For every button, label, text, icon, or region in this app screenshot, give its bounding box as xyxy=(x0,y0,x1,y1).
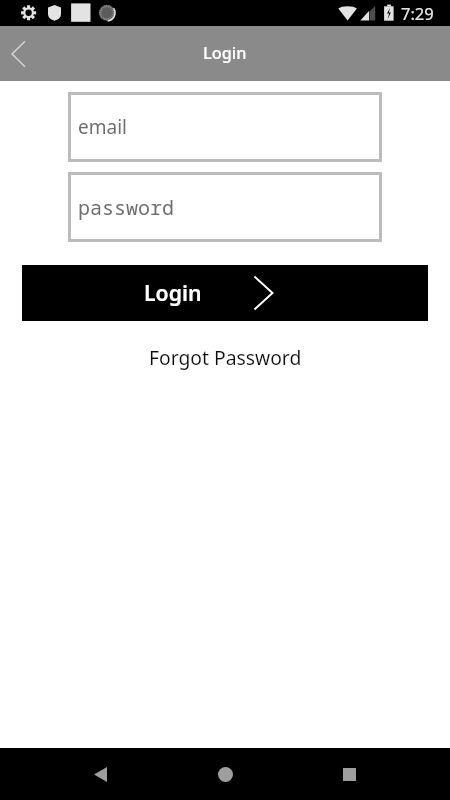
staticText: Login xyxy=(203,42,247,64)
button[interactable]: Login xyxy=(22,265,428,321)
staticText: password xyxy=(78,194,174,221)
staticText: email xyxy=(78,114,127,140)
button[interactable]: Recent apps xyxy=(300,748,450,800)
staticText: Login xyxy=(144,278,202,307)
button[interactable]: Back xyxy=(0,748,150,800)
button[interactable]: email xyxy=(68,92,382,162)
button[interactable]: Back xyxy=(0,26,44,81)
staticText: 7:29 xyxy=(401,2,434,24)
button[interactable]: Home xyxy=(150,748,300,800)
button[interactable]: password xyxy=(68,172,382,242)
button[interactable]: Forgot Password xyxy=(143,342,308,372)
